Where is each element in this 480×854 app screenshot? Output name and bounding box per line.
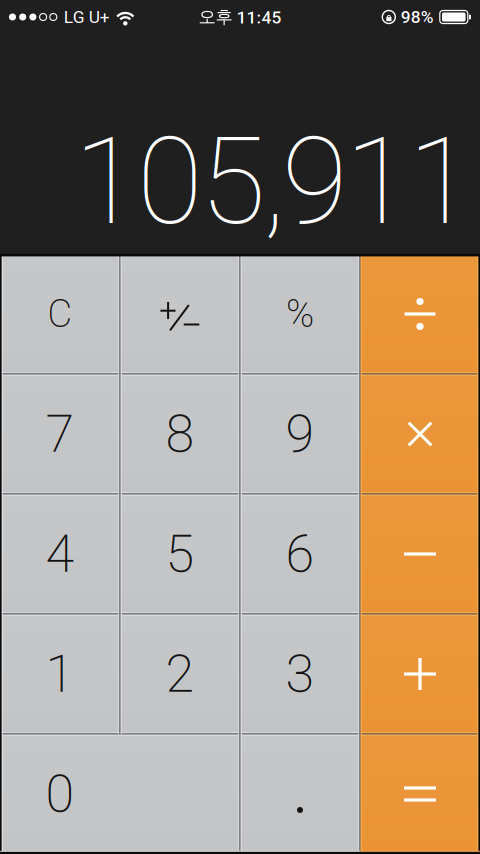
staticText: 오후 11:45 bbox=[198, 6, 281, 28]
staticText: 2 bbox=[165, 643, 194, 704]
staticText: 8 bbox=[165, 403, 194, 464]
button[interactable]: 0 bbox=[0, 734, 240, 854]
button[interactable]: 3 bbox=[240, 614, 360, 734]
button[interactable]: 7 bbox=[0, 374, 120, 494]
staticText: 4 bbox=[45, 523, 74, 584]
staticText: 105,911 bbox=[74, 112, 474, 252]
button[interactable]: Add bbox=[360, 614, 480, 734]
button[interactable]: 2 bbox=[120, 614, 240, 734]
button[interactable]: Subtract bbox=[360, 494, 480, 614]
button[interactable]: % bbox=[240, 254, 360, 374]
button[interactable]: Multiply bbox=[360, 374, 480, 494]
staticText: C bbox=[47, 292, 72, 336]
staticText: 9 bbox=[285, 403, 314, 464]
button[interactable]: C bbox=[0, 254, 120, 374]
staticText: 5 bbox=[165, 523, 194, 584]
button[interactable]: Plus minus bbox=[120, 254, 240, 374]
staticText: % bbox=[286, 292, 314, 336]
button[interactable]: Divide bbox=[360, 254, 480, 374]
button[interactable]: 8 bbox=[120, 374, 240, 494]
button[interactable]: Decimal point bbox=[240, 734, 360, 854]
button[interactable]: 1 bbox=[0, 614, 120, 734]
button[interactable]: 9 bbox=[240, 374, 360, 494]
staticText: LG U+ bbox=[64, 7, 110, 27]
staticText: 7 bbox=[45, 403, 74, 464]
staticText: 1 bbox=[45, 643, 74, 704]
staticText: 98% bbox=[401, 7, 434, 27]
button[interactable]: 4 bbox=[0, 494, 120, 614]
staticText: 6 bbox=[285, 523, 314, 584]
staticText: 0 bbox=[45, 763, 74, 824]
staticText: 3 bbox=[285, 643, 314, 704]
button[interactable]: 5 bbox=[120, 494, 240, 614]
button[interactable]: 6 bbox=[240, 494, 360, 614]
button[interactable]: Equals bbox=[360, 734, 480, 854]
